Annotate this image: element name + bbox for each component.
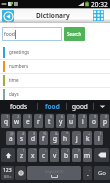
staticText: 5 xyxy=(50,114,53,119)
staticText: - xyxy=(78,131,80,136)
button[interactable]: x xyxy=(28,148,37,162)
button[interactable]: time xyxy=(0,74,110,86)
button[interactable]: m xyxy=(83,148,92,162)
staticText: , xyxy=(89,166,91,171)
staticText: greetings xyxy=(9,49,30,55)
button[interactable]: days xyxy=(0,88,110,100)
staticText: u xyxy=(69,117,74,126)
staticText: s xyxy=(20,134,24,143)
staticText: * xyxy=(66,131,69,136)
button[interactable]: foods xyxy=(0,100,37,113)
staticText: b xyxy=(64,151,68,160)
button[interactable]: g xyxy=(50,131,59,145)
staticText: , xyxy=(89,148,91,153)
staticText: z xyxy=(20,151,24,160)
staticText: @ xyxy=(10,131,14,136)
staticText: days xyxy=(9,91,19,97)
staticText: v xyxy=(53,151,57,160)
staticText: k xyxy=(86,134,90,143)
button[interactable]: greetings xyxy=(0,46,110,58)
staticText: & xyxy=(55,131,58,136)
button[interactable]: l xyxy=(94,131,103,145)
staticText: t xyxy=(48,117,51,126)
button[interactable]: a xyxy=(6,131,15,145)
button[interactable]: o xyxy=(89,114,98,128)
staticText: x xyxy=(31,151,35,160)
button[interactable]: t xyxy=(45,114,54,128)
button[interactable]: c xyxy=(39,148,48,162)
staticText: Search xyxy=(67,31,82,37)
staticText: 123 xyxy=(3,167,12,174)
staticText: 8 xyxy=(83,114,86,119)
button[interactable]: Backspace xyxy=(94,148,109,162)
staticText: 0 xyxy=(105,114,108,119)
staticText: / xyxy=(67,148,69,153)
staticText: ! xyxy=(23,148,25,153)
staticText: i xyxy=(82,117,84,126)
staticText: ( xyxy=(100,131,102,136)
staticText: ; xyxy=(56,148,58,153)
button[interactable]: q xyxy=(1,114,10,128)
staticText: e xyxy=(26,117,30,126)
button[interactable]: f xyxy=(39,131,48,145)
button[interactable]: More suggestions xyxy=(94,100,110,113)
button[interactable]: good xyxy=(67,100,93,113)
button[interactable]: y xyxy=(56,114,65,128)
staticText: 20:32 xyxy=(91,0,108,8)
button[interactable]: r xyxy=(34,114,43,128)
staticText: food xyxy=(4,31,15,38)
button[interactable]: food xyxy=(38,100,66,113)
staticText: w xyxy=(14,117,20,126)
staticText: foods xyxy=(10,102,28,111)
button[interactable]: Shift xyxy=(1,148,15,162)
button[interactable]: p xyxy=(100,114,109,128)
staticText: Dictionary xyxy=(36,11,70,20)
staticText: % xyxy=(43,131,47,136)
button[interactable]: Search xyxy=(64,27,85,41)
button[interactable]: k xyxy=(83,131,92,145)
button[interactable]: Categories grid xyxy=(93,10,104,21)
staticText: 2 xyxy=(17,114,20,119)
staticText: c xyxy=(42,151,46,160)
staticText: " xyxy=(34,148,36,153)
button[interactable]: v xyxy=(50,148,59,162)
button[interactable]: Settings xyxy=(15,166,26,180)
staticText: n xyxy=(74,151,79,160)
button[interactable]: i xyxy=(78,114,87,128)
button[interactable]: e xyxy=(23,114,32,128)
staticText: : xyxy=(45,148,47,153)
staticText: 3 xyxy=(28,114,31,119)
button[interactable]: Go xyxy=(94,166,110,180)
button[interactable]: s xyxy=(17,131,26,145)
staticText: &%= xyxy=(4,174,12,179)
button[interactable]: numbers xyxy=(0,60,110,72)
button[interactable]: food xyxy=(4,27,62,41)
staticText: # xyxy=(22,131,25,136)
button[interactable]: w xyxy=(12,114,21,128)
button[interactable]: z xyxy=(17,148,26,162)
button[interactable]: Navigate up xyxy=(2,10,14,22)
staticText: p xyxy=(103,117,107,126)
button[interactable]: n xyxy=(72,148,81,162)
button[interactable]: Space xyxy=(27,166,81,180)
button[interactable]: d xyxy=(28,131,37,145)
button[interactable]: . xyxy=(83,166,92,180)
staticText: ? xyxy=(78,148,80,153)
staticText: Go xyxy=(98,169,106,177)
staticText: l xyxy=(98,134,100,143)
staticText: y xyxy=(59,117,63,126)
staticText: q xyxy=(4,117,8,126)
staticText: f xyxy=(42,134,45,143)
staticText: 1 xyxy=(6,114,9,119)
staticText: h xyxy=(63,134,68,143)
button[interactable]: u xyxy=(67,114,76,128)
button[interactable]: h xyxy=(61,131,70,145)
staticText: 7 xyxy=(72,114,75,119)
staticText: English(US) xyxy=(45,169,64,174)
staticText: food xyxy=(45,102,60,111)
staticText: . xyxy=(87,169,89,178)
staticText: j xyxy=(76,134,78,143)
button[interactable]: b xyxy=(61,148,70,162)
button[interactable]: j xyxy=(72,131,81,145)
button[interactable]: Symbols xyxy=(1,166,14,180)
